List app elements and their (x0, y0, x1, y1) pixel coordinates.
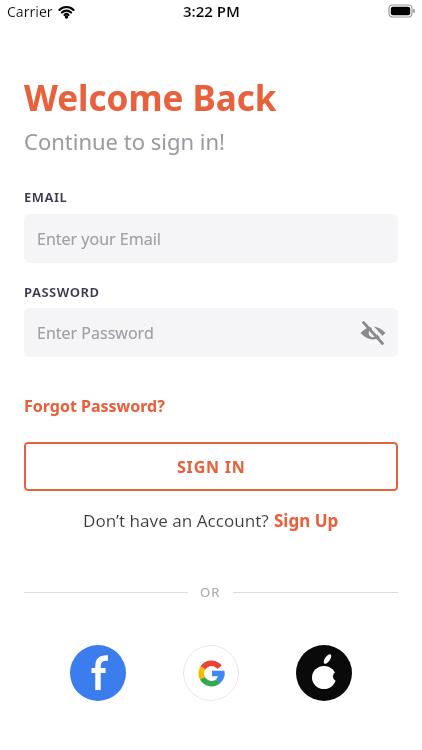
staticText: Continue to sign in! (24, 126, 225, 156)
button[interactable] (70, 645, 126, 701)
button[interactable] (296, 645, 352, 701)
staticText: Carrier (7, 2, 53, 21)
staticText: EMAIL (24, 188, 68, 206)
button[interactable]: Forgot Password? (24, 395, 165, 417)
staticText: Sign Up (274, 509, 339, 532)
staticText: SIGN IN (177, 456, 246, 478)
button[interactable]: SIGN IN (24, 442, 398, 491)
staticText: Don’t have an Account? (83, 509, 274, 532)
staticText: Welcome Back (24, 74, 277, 122)
staticText: Enter your Email (37, 228, 161, 250)
staticText: OR (200, 583, 221, 601)
button[interactable]: Enter your Email (24, 214, 398, 263)
button[interactable]: Enter Password (24, 308, 398, 357)
staticText: 3:22 PM (183, 1, 240, 21)
button[interactable]: Don’t have an Account? (83, 509, 339, 532)
staticText: Enter Password (37, 322, 154, 344)
staticText: PASSWORD (24, 283, 100, 301)
button[interactable] (183, 645, 239, 701)
